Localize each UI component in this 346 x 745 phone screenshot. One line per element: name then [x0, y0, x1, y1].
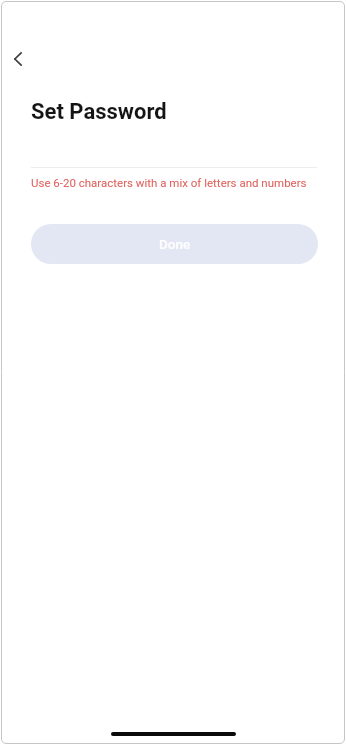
- staticText: Set Password: [31, 99, 167, 125]
- button[interactable]: Back: [0, 41, 36, 77]
- staticText: Use 6-20 characters with a mix of letter…: [31, 176, 307, 189]
- button[interactable]: Done: [31, 224, 318, 264]
- staticText: Done: [159, 236, 191, 252]
